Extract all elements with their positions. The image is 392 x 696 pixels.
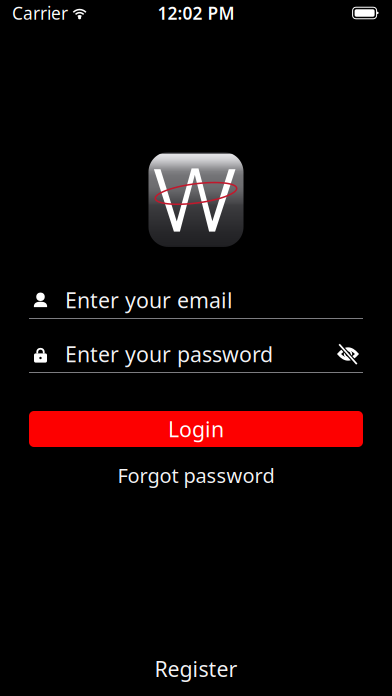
button[interactable]: Forgot password <box>103 457 288 494</box>
staticText: Forgot password <box>117 462 274 489</box>
button[interactable]: Login <box>29 411 363 447</box>
staticText: Login <box>168 415 224 443</box>
button[interactable]: Register <box>136 649 255 689</box>
button[interactable]: Show password <box>333 341 363 367</box>
staticText: Register <box>154 655 237 683</box>
staticText: 12:02 PM <box>157 1 234 24</box>
staticText: Carrier <box>12 1 68 24</box>
staticText: Enter your password <box>65 340 273 368</box>
staticText: Enter your email <box>65 286 233 314</box>
